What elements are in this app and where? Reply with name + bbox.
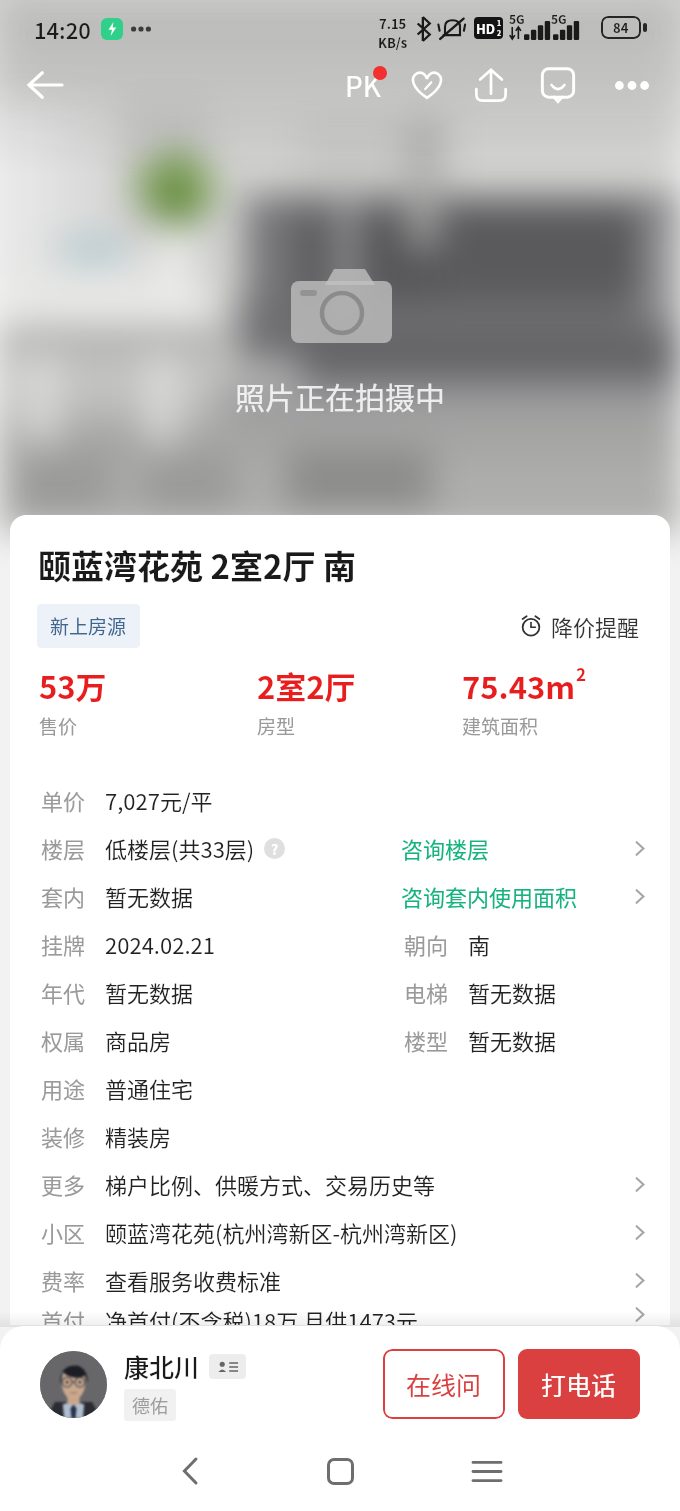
button[interactable]: Share [464,58,518,112]
staticText: 建筑面积 [462,712,539,740]
button[interactable]: Favorite [400,58,454,112]
staticText: 精装房 [105,1120,172,1152]
staticText: 普通住宅 [105,1072,194,1104]
staticText: 净首付(不含税)18万 月供1473元 [105,1304,419,1325]
staticText: 照片正在拍摄中 [235,374,445,417]
staticText: 在线问 [406,1366,482,1402]
staticText: 楼层 [41,832,86,864]
staticText: 德佑 [132,1392,168,1418]
staticText: 商品房 [105,1024,172,1056]
staticText: 年代 [41,976,86,1008]
staticText: 挂牌 [41,928,86,960]
button[interactable]: Agent avatar [40,1351,107,1418]
button[interactable]: 费率 [10,1256,670,1304]
staticText: HD [476,19,496,38]
staticText: 朝向 [404,928,449,960]
button[interactable]: Messages [531,58,585,112]
staticText: 低楼层(共33层) [105,832,255,864]
staticText: 楼型 [404,1024,449,1056]
button[interactable]: Recent apps [447,1431,527,1511]
staticText: 暂无数据 [468,976,557,1008]
button[interactable]: 权属 [10,1016,670,1064]
button[interactable]: 降价提醒 [520,610,640,642]
staticText: 查看服务收费标准 [105,1264,282,1296]
button[interactable]: 单价 [10,776,670,824]
button[interactable]: 新上房源 [37,604,140,648]
staticText: 14:20 [34,13,91,45]
staticText: 康北川 [124,1348,200,1384]
staticText: 新上房源 [50,612,127,640]
staticText: 暂无数据 [105,880,194,912]
staticText: 2 [576,661,587,686]
staticText: PK [345,65,381,106]
staticText: 75.43m [462,663,576,708]
button[interactable]: 更多 [10,1160,670,1208]
button[interactable]: 年代 [10,968,670,1016]
button[interactable]: 装修 [10,1112,670,1160]
staticText: 打电话 [541,1366,617,1402]
staticText: 降价提醒 [551,610,640,642]
staticText: 颐蓝湾花苑(杭州湾新区-杭州湾新区) [105,1216,458,1248]
staticText: 2024.02.21 [105,928,215,960]
staticText: 装修 [41,1120,86,1152]
button[interactable]: 在线问 [383,1349,505,1419]
staticText: 2室2厅 [257,663,356,708]
staticText: 5G [551,10,567,27]
button[interactable]: 挂牌 [10,920,670,968]
staticText: 颐蓝湾花苑 2室2厅 南 [38,541,356,589]
staticText: 首付 [41,1304,86,1325]
button[interactable]: 楼层 [10,824,670,872]
staticText: 2 [497,28,502,38]
staticText: 南 [468,928,491,960]
button[interactable]: Back [150,1431,230,1511]
staticText: 电梯 [404,976,449,1008]
staticText: 单价 [41,784,86,816]
button[interactable]: 用途 [10,1064,670,1112]
staticText: 房型 [257,712,296,740]
button[interactable]: 套内 [10,872,670,920]
staticText: 84 [613,18,629,37]
button[interactable]: PK comparison [336,58,390,112]
staticText: KB/s [378,33,408,52]
button[interactable]: 打电话 [518,1349,640,1419]
staticText: 暂无数据 [468,1024,557,1056]
staticText: 53万 [39,663,107,708]
button[interactable]: Back [18,58,72,112]
staticText: 套内 [41,880,86,912]
button[interactable]: 首付 [10,1304,670,1325]
staticText: 小区 [41,1216,86,1248]
staticText: 售价 [39,712,78,740]
staticText: 咨询套内使用面积 [401,880,578,912]
staticText: 7,027元/平 [105,784,213,816]
staticText: 咨询楼层 [401,832,490,864]
staticText: 梯户比例、供暖方式、交易历史等 [105,1168,436,1200]
staticText: 权属 [41,1024,86,1056]
staticText: 1 [497,18,502,28]
button[interactable]: 小区 [10,1208,670,1256]
button[interactable]: More options [605,58,659,112]
staticText: 用途 [41,1072,86,1104]
staticText: 暂无数据 [105,976,194,1008]
button[interactable]: Home [300,1431,380,1511]
staticText: 更多 [41,1168,86,1200]
staticText: ? [271,839,279,859]
staticText: 5G [509,10,525,27]
staticText: 费率 [41,1264,86,1296]
staticText: 7.15 [379,14,407,33]
